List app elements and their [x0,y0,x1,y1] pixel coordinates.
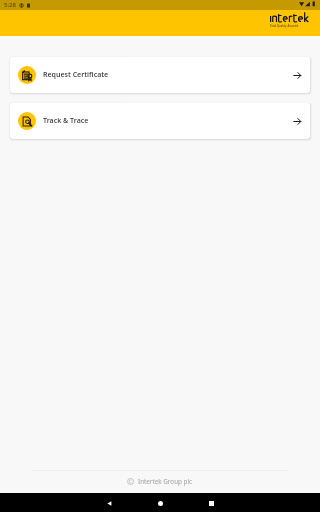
staticText: Track & Trace [43,116,89,126]
staticText: Intertek Group plc [138,477,193,486]
staticText: 5:28 [4,1,16,9]
button[interactable]: Back [100,494,118,512]
button[interactable]: Home [151,494,169,512]
button[interactable]: Recent apps [202,494,220,512]
staticText: Request Certificate [43,70,109,80]
button[interactable]: Request Certificate [10,57,310,93]
staticText: Total Quality. Assured. [270,24,299,28]
button[interactable]: Track & Trace [10,103,310,139]
